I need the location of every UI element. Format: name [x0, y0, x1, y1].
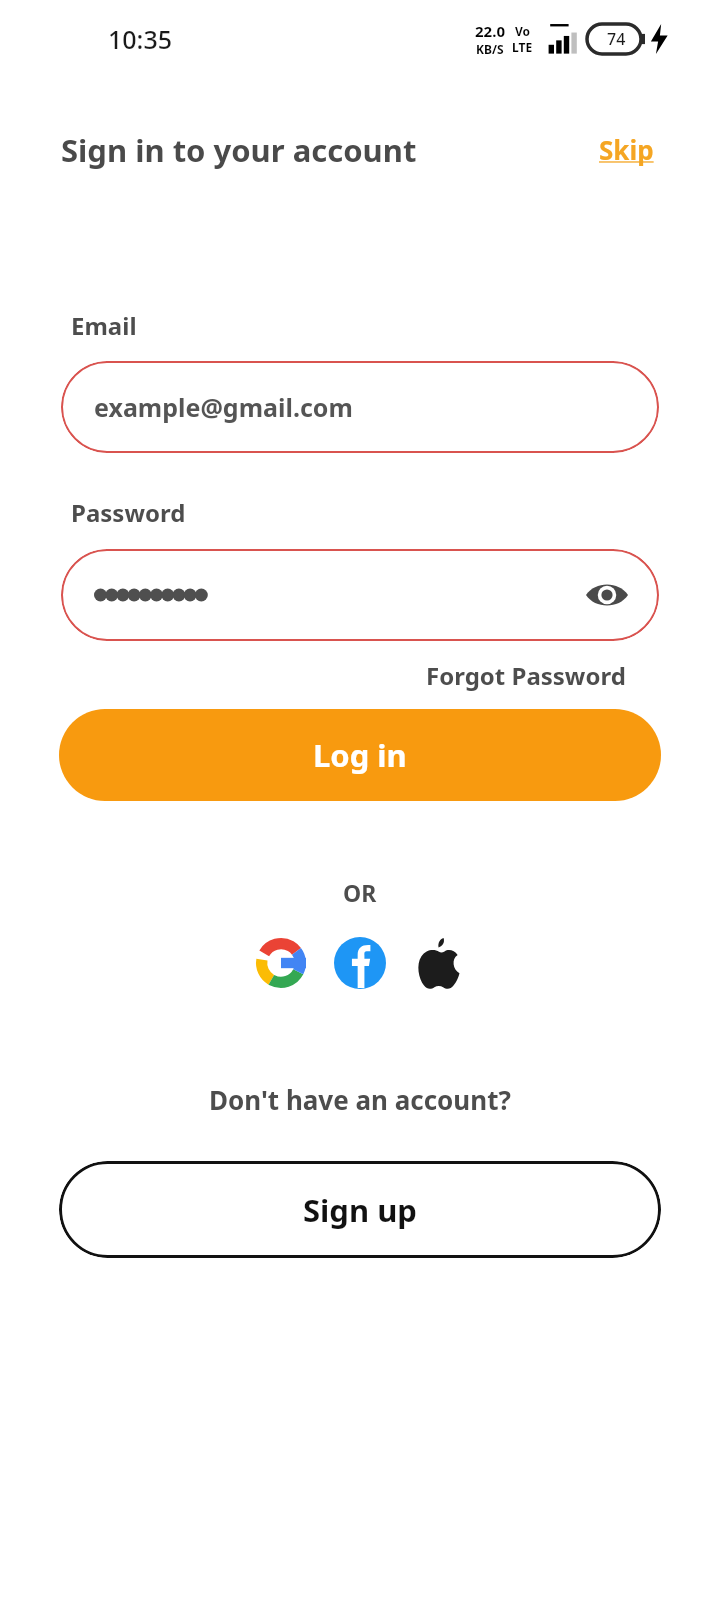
staticText: 10:35 — [108, 22, 173, 56]
staticText: example@gmail.com — [94, 390, 353, 424]
button[interactable]: Sign up — [59, 1161, 661, 1258]
staticText: KB/S — [476, 41, 504, 57]
button[interactable]: Show password — [580, 568, 634, 622]
staticText: Sign up — [303, 1189, 417, 1231]
button[interactable]: Sign in with Facebook — [327, 930, 393, 996]
button[interactable]: Forgot Password — [426, 659, 626, 692]
button[interactable]: Sign in with Google — [248, 930, 314, 996]
staticText: Vo — [515, 23, 531, 39]
button[interactable]: Skip — [595, 128, 658, 171]
staticText: Password — [71, 496, 186, 529]
staticText: Sign in to your account — [61, 129, 417, 171]
staticText: OR — [343, 877, 377, 908]
staticText: Email — [71, 309, 137, 342]
button[interactable]: Log in — [59, 709, 661, 801]
button[interactable]: Sign in with Apple — [406, 930, 472, 996]
staticText: Skip — [599, 132, 654, 167]
button[interactable]: Show password — [61, 549, 659, 641]
staticText: Log in — [313, 734, 407, 776]
staticText: 74 — [607, 28, 626, 50]
staticText: Don't have an account? — [209, 1082, 511, 1117]
staticText: 22.0 — [475, 21, 505, 41]
staticText: Forgot Password — [426, 659, 626, 692]
staticText: LTE — [512, 39, 533, 55]
button[interactable]: example@gmail.com — [61, 361, 659, 453]
